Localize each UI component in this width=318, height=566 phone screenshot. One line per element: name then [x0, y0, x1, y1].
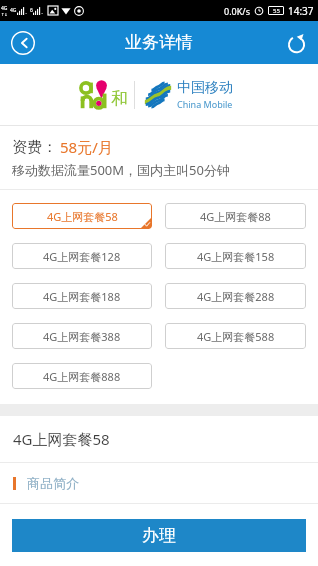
staticText: 4G上网套餐888	[43, 369, 121, 384]
button[interactable]: 4G上网套餐188	[12, 283, 152, 309]
staticText: 中国移动	[177, 79, 233, 97]
staticText: 、	[41, 8, 46, 14]
staticText: 、	[25, 8, 30, 14]
button[interactable]: 4G上网套餐58	[12, 203, 152, 229]
button[interactable]: 4G上网套餐888	[12, 363, 152, 389]
button[interactable]: 办理	[12, 519, 306, 552]
staticText: 4G	[1, 5, 8, 12]
button[interactable]: 4G上网套餐288	[165, 283, 306, 309]
staticText: 4G上网套餐188	[43, 289, 121, 304]
staticText: 和	[111, 88, 128, 109]
button[interactable]: 4G上网套餐88	[165, 203, 306, 229]
staticText: 资费：	[12, 138, 57, 157]
staticText: 0.0K/s	[224, 5, 250, 17]
button[interactable]: Refresh	[278, 25, 314, 61]
staticText: 4G上网套餐58	[47, 209, 118, 224]
staticText: ↑↓	[1, 12, 8, 17]
staticText: 58元/月	[60, 137, 113, 157]
staticText: 业务详情	[125, 32, 193, 53]
staticText: 4G上网套餐128	[43, 249, 121, 264]
button[interactable]: 4G上网套餐128	[12, 243, 152, 269]
button[interactable]: 4G上网套餐158	[165, 243, 306, 269]
button[interactable]: 4G上网套餐588	[165, 323, 306, 349]
staticText: 4G上网套餐88	[200, 209, 271, 224]
staticText: 14:37	[288, 4, 314, 18]
staticText: 4G上网套餐388	[43, 329, 121, 344]
staticText: 4G上网套餐288	[197, 289, 275, 304]
staticText: China Mobile	[177, 98, 233, 110]
staticText: 6	[30, 7, 33, 14]
staticText: 55	[273, 7, 280, 15]
staticText: 4G上网套餐58	[13, 429, 110, 449]
button[interactable]: 4G上网套餐388	[12, 323, 152, 349]
staticText: 4G上网套餐158	[197, 249, 275, 264]
staticText: 移动数据流量500M，国内主叫50分钟	[12, 161, 230, 179]
staticText: 4G	[10, 7, 17, 14]
staticText: 4G上网套餐588	[197, 329, 275, 344]
staticText: 办理	[142, 525, 176, 546]
staticText: 商品简介	[27, 475, 79, 491]
button[interactable]: Back	[5, 25, 41, 61]
